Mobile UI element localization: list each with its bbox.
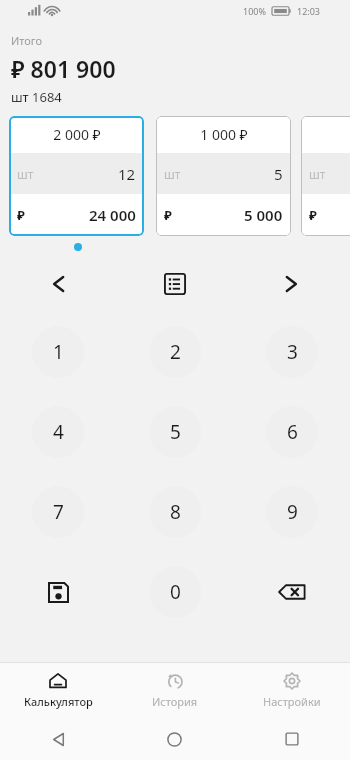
button[interactable]: 8 bbox=[149, 486, 201, 538]
staticText: 2 000 ₽ bbox=[53, 125, 101, 144]
staticText: Настройки bbox=[263, 694, 321, 709]
staticText: 7 bbox=[53, 499, 64, 525]
button[interactable]: Previous bbox=[0, 256, 116, 312]
button[interactable]: 5 bbox=[301, 116, 350, 236]
staticText: шт bbox=[164, 166, 181, 182]
staticText: 2 bbox=[170, 339, 181, 365]
staticText: ₽ bbox=[164, 206, 172, 224]
staticText: 12:03 bbox=[297, 5, 321, 17]
button[interactable]: List bbox=[116, 256, 233, 312]
button[interactable]: 2 bbox=[149, 326, 201, 378]
staticText: 4 bbox=[53, 419, 64, 445]
button[interactable]: 1 000 ₽ bbox=[156, 116, 291, 236]
staticText: 8 bbox=[170, 499, 181, 525]
staticText: 12 bbox=[118, 164, 136, 184]
staticText: ₽ bbox=[17, 206, 25, 224]
staticText: История bbox=[152, 694, 198, 709]
button[interactable]: 2 000 ₽ bbox=[9, 116, 144, 236]
button[interactable]: Настройки bbox=[233, 662, 350, 718]
staticText: 9 bbox=[287, 499, 298, 525]
staticText: 1 bbox=[53, 339, 64, 365]
staticText: 5 bbox=[170, 419, 181, 445]
button[interactable]: Save bbox=[0, 566, 116, 618]
staticText: 5 000 bbox=[244, 205, 283, 225]
staticText: 1 000 ₽ bbox=[200, 125, 248, 144]
staticText: ₽ bbox=[309, 206, 317, 224]
button[interactable]: 5 bbox=[149, 406, 201, 458]
staticText: 3 bbox=[287, 339, 298, 365]
button[interactable]: 7 bbox=[32, 486, 84, 538]
staticText: шт bbox=[17, 166, 34, 182]
button[interactable]: Home bbox=[116, 718, 233, 760]
button[interactable]: 1 bbox=[32, 326, 84, 378]
staticText: 100% bbox=[243, 5, 266, 17]
button[interactable]: Калькулятор bbox=[0, 662, 116, 718]
staticText: 0 bbox=[170, 579, 181, 605]
staticText: ₽ 801 900 bbox=[11, 53, 116, 84]
button[interactable]: 3 bbox=[266, 326, 318, 378]
button[interactable]: Next bbox=[233, 256, 350, 312]
button[interactable]: Recents bbox=[233, 718, 350, 760]
button[interactable]: 6 bbox=[266, 406, 318, 458]
staticText: Калькулятор bbox=[24, 694, 93, 709]
staticText: шт bbox=[309, 166, 326, 182]
button[interactable]: 9 bbox=[266, 486, 318, 538]
staticText: 6 bbox=[287, 419, 298, 445]
button[interactable]: Backspace bbox=[233, 566, 350, 618]
button[interactable]: Back bbox=[0, 718, 116, 760]
staticText: шт 1684 bbox=[11, 88, 62, 106]
staticText: 24 000 bbox=[89, 205, 136, 225]
staticText: Итого bbox=[11, 33, 43, 48]
button[interactable]: 0 bbox=[149, 566, 201, 618]
staticText: 5 bbox=[274, 164, 283, 184]
button[interactable]: 4 bbox=[32, 406, 84, 458]
button[interactable]: История bbox=[116, 662, 233, 718]
